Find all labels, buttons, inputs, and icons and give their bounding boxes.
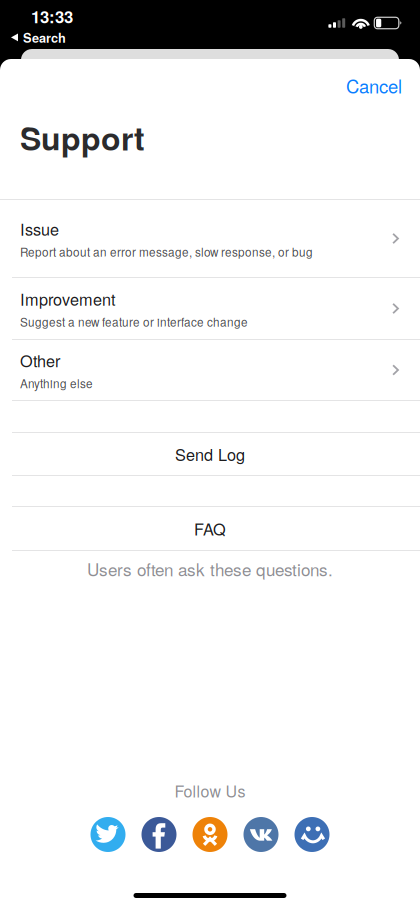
staticText: 13:33 [31,4,73,29]
staticText: Search [23,28,66,47]
button[interactable]: Send Log [0,433,420,475]
button[interactable]: VKontakte [243,817,278,852]
button[interactable]: Cancel [322,62,420,109]
button[interactable]: Other [0,340,420,400]
staticText: Suggest a new feature or interface chang… [20,313,248,330]
button[interactable]: Twitter [90,817,125,852]
button[interactable]: Odnoklassniki [192,817,227,852]
staticText: Report about an error message, slow resp… [20,243,313,260]
staticText: Cancel [346,72,402,99]
staticText: Anything else [20,375,93,391]
button[interactable]: Facebook [141,817,176,852]
staticText: FAQ [194,517,226,540]
staticText: Follow Us [174,779,245,802]
staticText: Other [20,348,60,372]
button[interactable]: FAQ [0,507,420,550]
staticText: Send Log [175,442,245,466]
staticText: Issue [20,217,59,240]
staticText: Users often ask these questions. [87,557,333,581]
staticText: Support [20,115,145,160]
staticText: Improvement [20,287,116,310]
button[interactable]: Improvement [0,278,420,339]
button[interactable]: Issue [0,200,420,277]
button[interactable]: My World [294,817,329,852]
